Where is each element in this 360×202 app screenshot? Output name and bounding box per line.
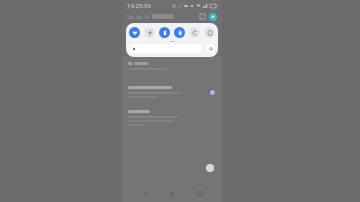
button[interactable]: Expand quick settings — [206, 44, 215, 53]
button[interactable]: Settings — [199, 13, 206, 20]
button[interactable]: Recent apps — [195, 189, 205, 199]
button[interactable]: Add — [206, 164, 214, 172]
button[interactable]: Brightness — [129, 44, 203, 53]
button[interactable]: Flashlight — [159, 27, 170, 38]
button[interactable]: Bluetooth — [174, 27, 185, 38]
button[interactable]: Screen record — [204, 27, 215, 38]
button[interactable]: Home — [167, 189, 177, 199]
button[interactable]: Toggle — [207, 89, 216, 95]
button[interactable]: Account — [209, 13, 217, 21]
staticText: Sat, Jan 14 — [127, 14, 149, 20]
button[interactable]: Toggle — [128, 86, 216, 98]
button[interactable] — [128, 110, 216, 126]
button[interactable]: Back — [140, 189, 150, 199]
button[interactable]: Do not disturb — [144, 27, 155, 38]
button[interactable]: Auto rotate — [189, 27, 200, 38]
staticText: 14:25:56 — [127, 2, 151, 10]
button[interactable]: Internet — [129, 27, 140, 38]
